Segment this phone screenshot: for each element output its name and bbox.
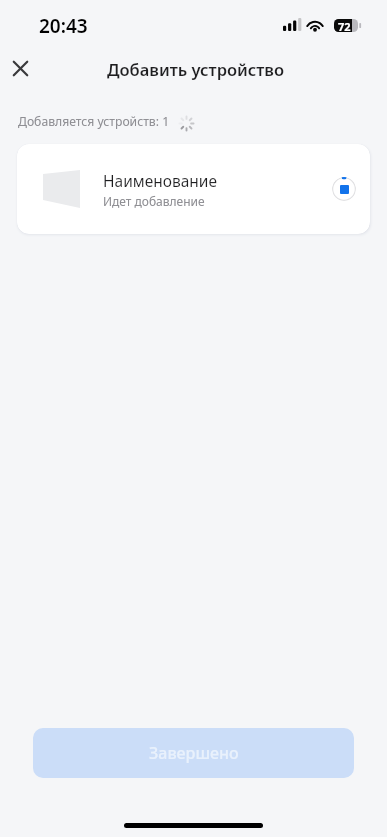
staticText: Добавляется устройств: 1	[18, 113, 170, 130]
staticText: Завершено	[149, 742, 239, 764]
staticText: Добавить устройство	[107, 58, 285, 80]
staticText: 20:43	[39, 13, 88, 39]
button[interactable]: Остановить добавление	[332, 177, 356, 201]
staticText: Идет добавление	[103, 193, 205, 209]
button[interactable]: Наименование	[17, 144, 370, 234]
button[interactable]: Закрыть	[0, 48, 41, 89]
staticText: 72	[338, 19, 351, 32]
staticText: Наименование	[103, 170, 217, 191]
button[interactable]: Завершено	[33, 728, 354, 778]
